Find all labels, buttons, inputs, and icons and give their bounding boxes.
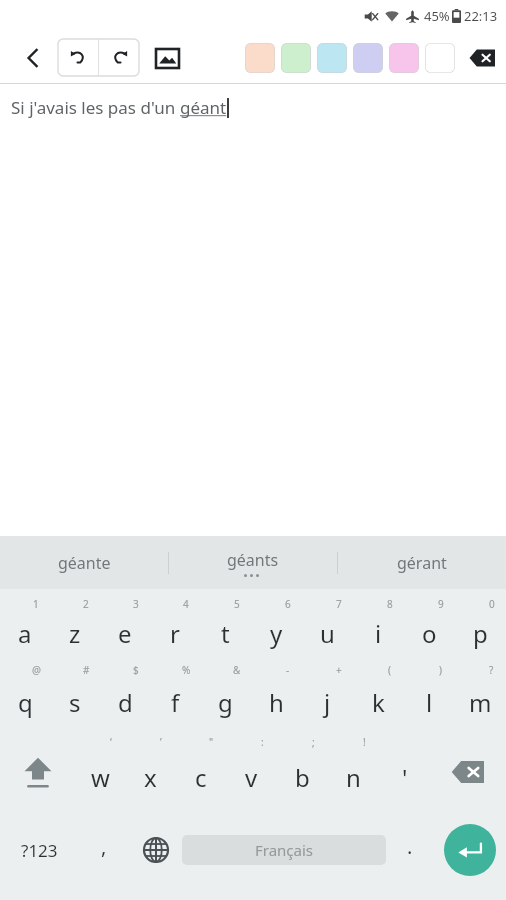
button[interactable]: 3 bbox=[100, 595, 150, 661]
staticText: # bbox=[83, 663, 90, 677]
staticText: f bbox=[171, 686, 180, 719]
staticText: 7 bbox=[336, 597, 342, 611]
button[interactable]: 6 bbox=[251, 595, 302, 661]
button[interactable]: géante bbox=[0, 536, 168, 589]
button[interactable]: ; bbox=[277, 733, 328, 811]
button[interactable]: Colour 5 bbox=[389, 43, 419, 73]
staticText: : bbox=[261, 735, 264, 749]
button[interactable]: ?123 bbox=[0, 811, 78, 889]
button[interactable]: 4 bbox=[150, 595, 200, 661]
button[interactable]: ) bbox=[404, 661, 455, 733]
staticText: ’ bbox=[160, 735, 162, 749]
button[interactable]: & bbox=[200, 661, 251, 733]
staticText: 4 bbox=[183, 597, 189, 611]
button[interactable]: Français bbox=[182, 835, 386, 865]
staticText: gérant bbox=[397, 552, 447, 574]
staticText: g bbox=[218, 686, 233, 719]
staticText: Français bbox=[255, 840, 314, 860]
button[interactable]: Insert image bbox=[146, 37, 188, 79]
button[interactable]: gérant bbox=[338, 536, 506, 589]
staticText: 45% bbox=[424, 7, 450, 25]
button[interactable]: ' bbox=[379, 733, 430, 811]
staticText: w bbox=[91, 761, 110, 794]
button[interactable]: ! bbox=[328, 733, 379, 811]
staticText: 5 bbox=[234, 597, 240, 611]
staticText: y bbox=[270, 617, 283, 650]
staticText: ' bbox=[402, 761, 408, 794]
staticText: ? bbox=[489, 663, 494, 677]
staticText: b bbox=[295, 761, 310, 794]
staticText: l bbox=[426, 686, 433, 719]
staticText: e bbox=[118, 617, 132, 650]
staticText: t bbox=[221, 617, 230, 650]
button[interactable]: 8 bbox=[353, 595, 404, 661]
button[interactable]: ? bbox=[455, 661, 506, 733]
button[interactable]: Colour 2 bbox=[281, 43, 311, 73]
button[interactable]: : bbox=[226, 733, 277, 811]
button[interactable]: # bbox=[50, 661, 100, 733]
staticText: v bbox=[245, 761, 258, 794]
staticText: p bbox=[473, 617, 488, 650]
button[interactable]: Si j'avais les pas d'un bbox=[0, 84, 506, 536]
button[interactable]: 7 bbox=[302, 595, 353, 661]
button[interactable]: + bbox=[302, 661, 353, 733]
staticText: " bbox=[209, 735, 214, 749]
button[interactable]: Backspace bbox=[430, 733, 506, 811]
button[interactable]: 1 bbox=[0, 595, 50, 661]
staticText: & bbox=[233, 663, 241, 677]
staticText: , bbox=[101, 833, 107, 860]
button[interactable]: , bbox=[78, 811, 130, 889]
button[interactable]: Redo bbox=[99, 39, 139, 76]
button[interactable]: 5 bbox=[200, 595, 251, 661]
button[interactable]: Undo bbox=[58, 39, 98, 76]
staticText: i bbox=[375, 617, 382, 650]
staticText: 2 bbox=[83, 597, 89, 611]
staticText: 1 bbox=[33, 597, 39, 611]
staticText: géants bbox=[227, 549, 279, 571]
staticText: @ bbox=[32, 663, 41, 677]
staticText: ) bbox=[439, 663, 442, 677]
button[interactable]: Colour 4 bbox=[353, 43, 383, 73]
staticText: 0 bbox=[489, 597, 495, 611]
staticText: ; bbox=[312, 735, 315, 749]
staticText: ! bbox=[363, 735, 366, 749]
button[interactable]: 2 bbox=[50, 595, 100, 661]
staticText: ( bbox=[388, 663, 391, 677]
button[interactable]: Colour 3 bbox=[317, 43, 347, 73]
button[interactable]: ’ bbox=[125, 733, 175, 811]
staticText: n bbox=[346, 761, 361, 794]
staticText: k bbox=[372, 686, 385, 719]
button[interactable]: 0 bbox=[455, 595, 506, 661]
staticText: s bbox=[69, 686, 81, 719]
staticText: j bbox=[324, 686, 331, 719]
button[interactable]: . bbox=[386, 811, 434, 889]
button[interactable]: Change language bbox=[130, 811, 182, 889]
staticText: . bbox=[407, 833, 413, 860]
button[interactable]: @ bbox=[0, 661, 50, 733]
button[interactable]: Erase bbox=[462, 38, 502, 78]
staticText: 6 bbox=[285, 597, 291, 611]
staticText: 9 bbox=[438, 597, 444, 611]
button[interactable]: % bbox=[150, 661, 200, 733]
button[interactable]: - bbox=[251, 661, 302, 733]
button[interactable]: 9 bbox=[404, 595, 455, 661]
staticText: ?123 bbox=[21, 839, 58, 862]
staticText: h bbox=[269, 686, 284, 719]
staticText: m bbox=[469, 686, 492, 719]
button[interactable]: géants bbox=[169, 536, 337, 589]
staticText: % bbox=[182, 663, 191, 677]
staticText: géant bbox=[180, 96, 227, 119]
button[interactable]: Back bbox=[12, 37, 54, 79]
staticText: q bbox=[18, 686, 33, 719]
button[interactable]: ‘ bbox=[75, 733, 125, 811]
button[interactable]: Colour 6 bbox=[425, 43, 455, 73]
button[interactable]: $ bbox=[100, 661, 150, 733]
button[interactable]: " bbox=[175, 733, 226, 811]
button[interactable]: Shift bbox=[0, 733, 75, 811]
staticText: - bbox=[286, 663, 290, 677]
button[interactable]: ( bbox=[353, 661, 404, 733]
staticText: ‘ bbox=[110, 735, 112, 749]
button[interactable]: Enter bbox=[444, 824, 496, 876]
staticText: a bbox=[18, 617, 32, 650]
button[interactable]: Colour 1 bbox=[245, 43, 275, 73]
